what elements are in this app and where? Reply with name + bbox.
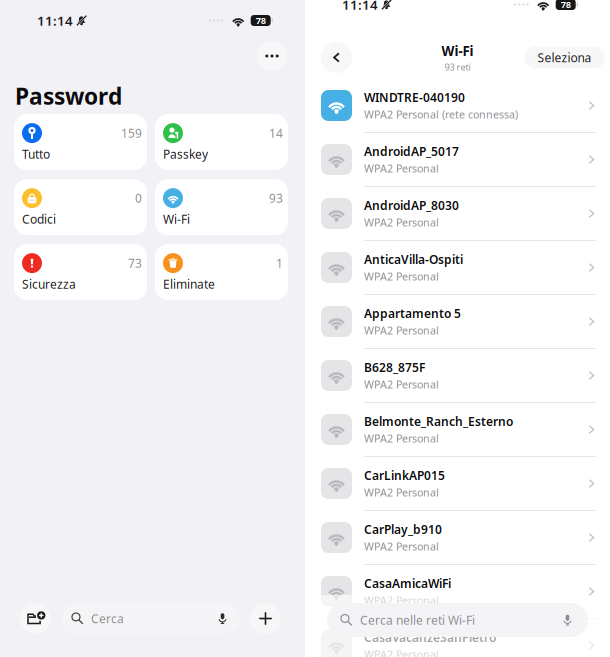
- staticText: 159: [121, 125, 142, 141]
- button[interactable]: Seleziona: [524, 46, 605, 68]
- staticText: AndroidAP_8030: [364, 197, 459, 213]
- button[interactable]: CarLinkAP015: [305, 457, 610, 511]
- button[interactable]: CarPlay_b910: [305, 511, 610, 565]
- button[interactable]: Altro: [257, 41, 287, 71]
- button[interactable]: WINDTRE-040190: [305, 79, 610, 133]
- staticText: CarPlay_b910: [364, 521, 442, 537]
- staticText: Appartamento 5: [364, 305, 461, 321]
- staticText: WPA2 Personal: [364, 377, 439, 392]
- staticText: AndroidAP_5017: [364, 143, 459, 159]
- staticText: 14: [269, 125, 283, 141]
- button[interactable]: 1: [155, 244, 288, 300]
- staticText: WINDTRE-040190: [364, 89, 465, 105]
- button[interactable]: CasaVacanzeSanPietro: [305, 619, 610, 657]
- staticText: WPA2 Personal: [364, 593, 439, 608]
- staticText: Password: [15, 81, 122, 111]
- button[interactable]: Indietro: [321, 42, 352, 73]
- staticText: Belmonte_Ranch_Esterno: [364, 413, 513, 429]
- staticText: WPA2 Personal: [364, 485, 439, 500]
- staticText: Wi-Fi: [163, 211, 190, 227]
- staticText: WPA2 Personal: [364, 269, 439, 284]
- staticText: WPA2 Personal: [364, 323, 439, 338]
- button[interactable]: Nuova cartella: [20, 603, 51, 634]
- button[interactable]: Cerca: [61, 603, 240, 634]
- staticText: WPA2 Personal: [364, 215, 439, 230]
- staticText: Codici: [22, 211, 56, 227]
- staticText: CarLinkAP015: [364, 467, 445, 483]
- staticText: B628_875F: [364, 359, 425, 375]
- button[interactable]: AnticaVilla-Ospiti: [305, 241, 610, 295]
- staticText: 73: [128, 255, 142, 271]
- staticText: 93: [269, 190, 283, 206]
- staticText: Tutto: [22, 146, 50, 162]
- button[interactable]: CasaAmicaWiFi: [305, 565, 610, 619]
- staticText: 78: [256, 14, 266, 27]
- staticText: 1: [276, 255, 283, 271]
- staticText: Wi-Fi: [441, 42, 473, 60]
- button[interactable]: Cerca nelle reti Wi-Fi: [327, 603, 588, 637]
- staticText: Cerca: [91, 610, 124, 626]
- staticText: Seleziona: [537, 49, 591, 65]
- button[interactable]: 0: [14, 179, 147, 235]
- button[interactable]: Appartamento 5: [305, 295, 610, 349]
- button[interactable]: B628_875F: [305, 349, 610, 403]
- staticText: Passkey: [163, 146, 208, 162]
- button[interactable]: AndroidAP_8030: [305, 187, 610, 241]
- staticText: CasaVacanzeSanPietro: [364, 629, 496, 645]
- staticText: WPA2 Personal: [364, 539, 439, 554]
- staticText: Eliminate: [163, 276, 215, 292]
- staticText: WPA2 Personal: [364, 431, 439, 446]
- staticText: WPA2 Personal (rete connessa): [364, 107, 518, 122]
- button[interactable]: 159: [14, 114, 147, 170]
- staticText: Cerca nelle reti Wi-Fi: [360, 612, 475, 628]
- staticText: WPA2 Personal: [364, 647, 439, 657]
- button[interactable]: Aggiungi: [250, 603, 281, 634]
- staticText: 78: [561, 0, 571, 11]
- staticText: 11:14: [37, 12, 73, 29]
- staticText: 93 reti: [444, 61, 470, 73]
- button[interactable]: 93: [155, 179, 288, 235]
- staticText: AnticaVilla-Ospiti: [364, 251, 463, 267]
- button[interactable]: 73: [14, 244, 147, 300]
- staticText: WPA2 Personal: [364, 161, 439, 176]
- staticText: Sicurezza: [22, 276, 76, 292]
- staticText: 11:14: [342, 0, 378, 13]
- staticText: CasaAmicaWiFi: [364, 575, 451, 591]
- button[interactable]: 14: [155, 114, 288, 170]
- staticText: 0: [135, 190, 142, 206]
- button[interactable]: AndroidAP_5017: [305, 133, 610, 187]
- button[interactable]: Belmonte_Ranch_Esterno: [305, 403, 610, 457]
